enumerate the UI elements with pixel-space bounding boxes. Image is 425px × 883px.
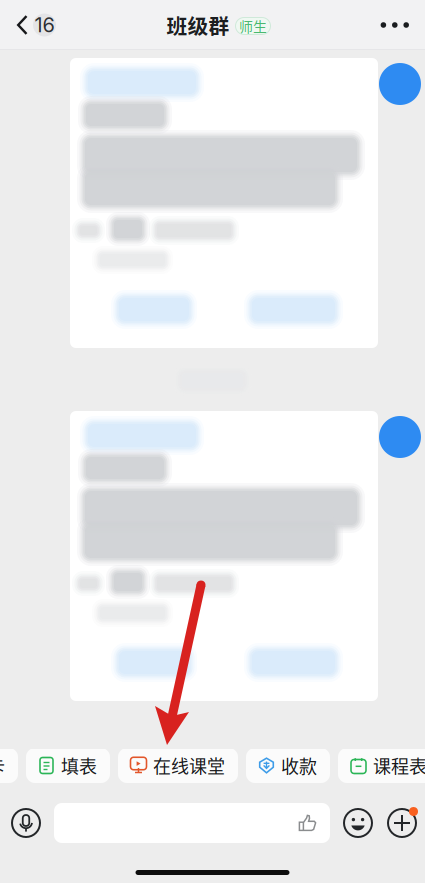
- staticText: 收款: [281, 752, 317, 779]
- button[interactable]: 在线课堂: [118, 748, 238, 783]
- button[interactable]: More: [365, 0, 425, 49]
- staticText: 班级群: [166, 10, 229, 40]
- button[interactable]: 课程表: [338, 748, 425, 783]
- staticText: 师生: [239, 16, 267, 36]
- staticText: 在线课堂: [153, 752, 225, 779]
- button[interactable]: 卡: [0, 748, 18, 783]
- button[interactable]: 填表: [26, 748, 110, 783]
- staticText: 课程表: [373, 752, 425, 779]
- button[interactable]: Emoji: [330, 808, 373, 838]
- button[interactable]: 收款: [246, 748, 330, 783]
- button[interactable]: Back, 16 unread: [0, 0, 68, 49]
- staticText: 16: [34, 13, 54, 37]
- staticText: 填表: [61, 752, 97, 779]
- button[interactable]: More actions: [373, 808, 418, 838]
- button[interactable]: Voice message: [0, 808, 41, 838]
- staticText: 卡: [0, 752, 5, 779]
